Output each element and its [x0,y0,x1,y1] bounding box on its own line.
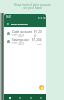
button[interactable]: Stats [28,95,33,100]
staticText: Savings acc [12,38,30,42]
button[interactable]: Cards [17,95,22,100]
button[interactable]: Cash account [4,30,46,37]
staticText: $1,204 [32,38,42,42]
staticText: **** 4321 [12,34,25,37]
staticText: USD [37,42,42,45]
staticText: 9:41 [6,15,12,19]
staticText: **** 4321 [12,42,25,45]
button[interactable]: Profile [38,95,43,100]
button[interactable]: Home [7,95,12,100]
staticText: Keep track of your account on your hand [14,3,51,10]
button[interactable]: Savings acc [4,38,46,45]
staticText: Bank accounts [11,22,28,25]
staticText: $1,204 [34,30,43,37]
button[interactable]: Back [6,22,10,26]
staticText: Cash account [12,30,32,34]
button[interactable]: Add account [39,85,44,90]
